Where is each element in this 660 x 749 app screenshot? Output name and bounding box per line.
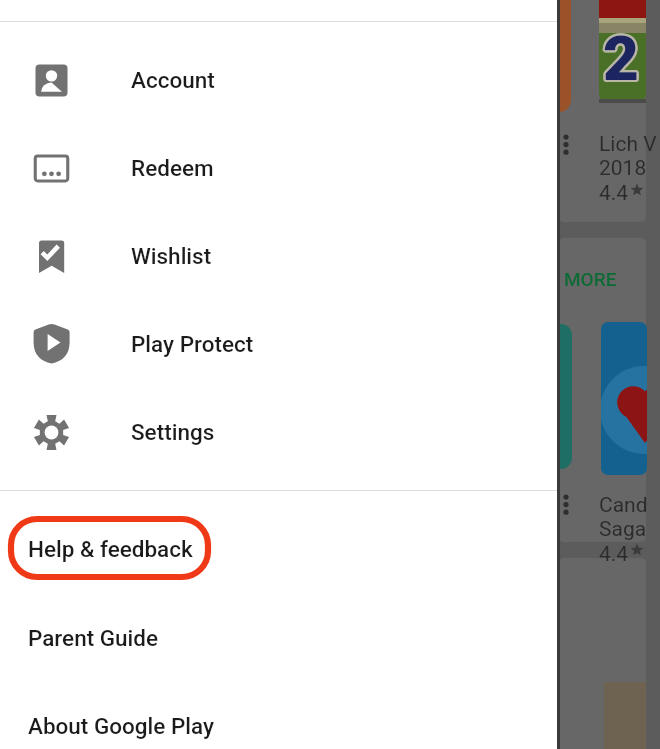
staticText: 2 (601, 23, 637, 96)
button[interactable]: Parent Guide (0, 594, 557, 682)
button[interactable]: About Google Play (0, 682, 557, 749)
staticText: 2 (602, 22, 638, 95)
staticText: Cand (599, 493, 648, 518)
staticText: 2 (601, 21, 637, 94)
staticText: 2 (604, 21, 640, 94)
staticText: 2 (603, 21, 639, 94)
button[interactable]: Account (0, 36, 557, 124)
staticText: 2 (603, 22, 639, 95)
button[interactable]: Redeem (0, 124, 557, 212)
button[interactable]: Settings (0, 388, 557, 476)
staticText: Redeem (131, 155, 214, 181)
staticText: 2 (604, 22, 640, 95)
staticText: Parent Guide (28, 625, 159, 651)
staticText: 2 (605, 21, 641, 94)
other: Play Protect (33, 326, 70, 363)
button[interactable]: Help & feedback (0, 505, 557, 593)
other: Settings (33, 414, 70, 451)
staticText: 2 (603, 22, 639, 95)
staticText: Play Protect (131, 331, 254, 357)
staticText: 2 (602, 23, 638, 96)
staticText: 2018 (599, 156, 647, 181)
button[interactable]: Wishlist (0, 212, 557, 300)
staticText: Help & feedback (28, 536, 193, 562)
staticText: Saga (599, 517, 647, 542)
staticText: Lich V (599, 132, 657, 157)
staticText: 2 (604, 20, 640, 93)
other: Redeem (33, 150, 70, 187)
other: Account (33, 62, 70, 99)
staticText: MORE (564, 268, 617, 290)
staticText: 2 (603, 23, 639, 96)
other: Wishlist (33, 238, 70, 275)
staticText: Account (131, 67, 215, 93)
staticText: Settings (131, 419, 215, 445)
staticText: 2 (603, 20, 639, 93)
staticText: 4.4 (599, 181, 629, 206)
staticText: 2 (603, 24, 639, 97)
staticText: 2 (602, 21, 638, 94)
staticText: 2 (601, 22, 637, 95)
staticText: 2 (602, 24, 638, 97)
staticText: 4.4 (599, 542, 629, 567)
button[interactable]: Play Protect (0, 300, 557, 388)
staticText: 2 (605, 22, 641, 95)
staticText: 2 (605, 23, 641, 96)
staticText: 2 (604, 23, 640, 96)
staticText: About Google Play (28, 713, 214, 739)
staticText: 2 (602, 20, 638, 93)
staticText: 2 (604, 24, 640, 97)
staticText: Wishlist (131, 243, 212, 269)
